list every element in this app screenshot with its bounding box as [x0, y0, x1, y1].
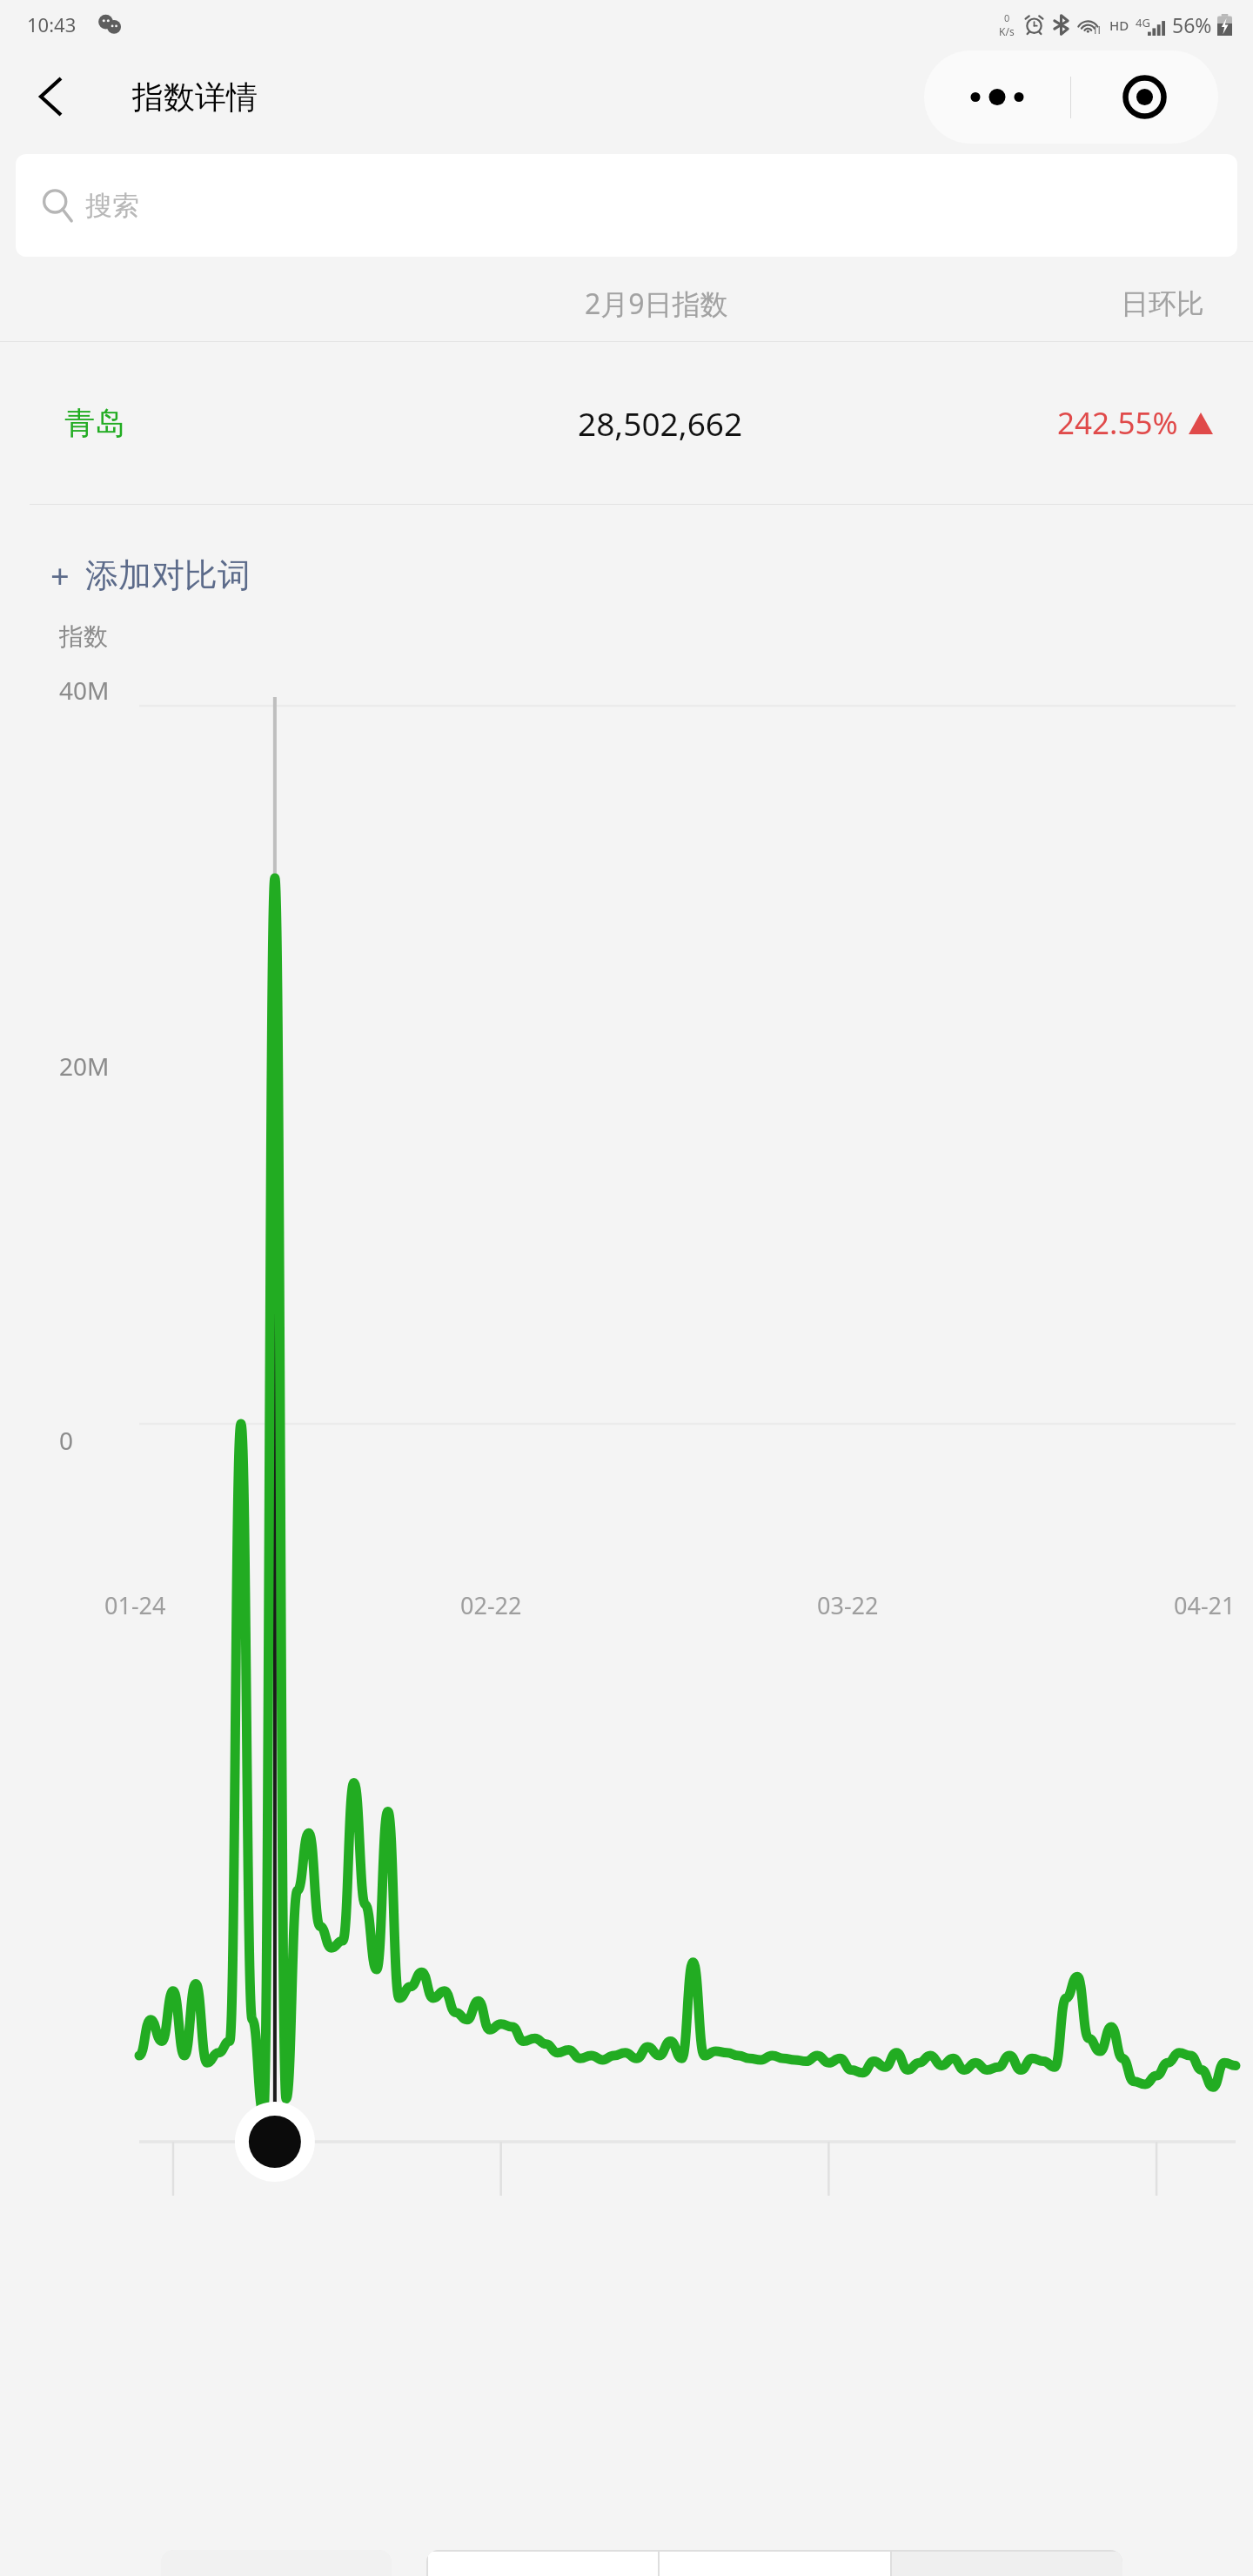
staticText: 0 [1004, 11, 1010, 24]
staticText: HD [1109, 17, 1129, 34]
staticText: 指数详情 [132, 77, 258, 117]
staticText: 242.55% [1057, 402, 1178, 444]
staticText: 4G [1136, 15, 1150, 30]
staticText: + [50, 553, 70, 598]
staticText: 指数 [59, 621, 108, 652]
staticText: K/s [999, 24, 1015, 38]
button[interactable]: 搜索 [16, 154, 1237, 257]
button[interactable] [0, 614, 1253, 2576]
staticText: 28,502,662 [578, 401, 743, 445]
staticText: 04-21 [1174, 1589, 1236, 1621]
staticText: 添加对比词 [85, 554, 251, 596]
staticText: 2月9日指数 [585, 285, 728, 323]
staticText: 日环比 [1121, 286, 1204, 321]
staticText: 03-22 [817, 1589, 879, 1621]
button[interactable]: + [50, 536, 251, 614]
staticText: 02-22 [460, 1589, 522, 1621]
staticText: 10:43 [27, 11, 77, 37]
staticText: 01-24 [104, 1589, 166, 1621]
button[interactable]: More options and close mini program [924, 50, 1218, 144]
staticText: 56% [1172, 11, 1212, 38]
staticText: 青岛 [64, 404, 125, 442]
staticText: 搜索 [85, 189, 139, 223]
button[interactable]: Back [19, 65, 82, 128]
staticText: 20M [59, 1050, 110, 1083]
button[interactable]: 青岛 [0, 342, 1253, 504]
staticText: 0 [59, 1424, 74, 1457]
staticText: 40M [59, 674, 110, 707]
